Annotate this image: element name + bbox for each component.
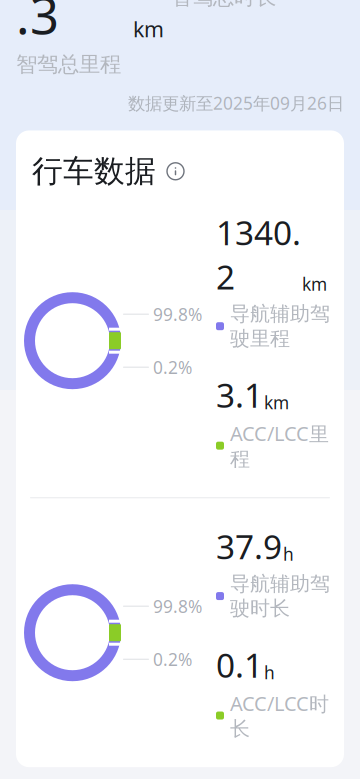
staticText: km xyxy=(264,391,289,414)
staticText: 0.1 xyxy=(216,643,263,687)
staticText: 0.2% xyxy=(153,648,192,671)
button[interactable]: 行车数据说明 xyxy=(163,159,188,184)
staticText: 37.9 xyxy=(216,524,282,569)
staticText: 导航辅助驾驶时长 xyxy=(230,571,330,621)
staticText: h xyxy=(264,661,275,684)
staticText: ACC/LCC里程 xyxy=(230,420,329,471)
staticText: 行车数据 xyxy=(32,152,156,190)
staticText: h xyxy=(283,542,294,565)
staticText: 智驾总时长 xyxy=(171,0,276,10)
staticText: 导航辅助驾驶里程 xyxy=(230,302,330,351)
staticText: 数据更新至2025年09月26日 xyxy=(128,91,344,114)
staticText: 3.1 xyxy=(216,373,263,417)
staticText: 99.8% xyxy=(153,303,202,326)
staticText: km xyxy=(302,273,327,296)
staticText: 0.2% xyxy=(153,356,192,379)
staticText: ACC/LCC时长 xyxy=(230,690,329,741)
staticText: 智驾总里程 xyxy=(16,51,121,77)
staticText: 99.8% xyxy=(153,595,202,618)
staticText: km xyxy=(133,15,164,43)
staticText: 1340.2 xyxy=(216,210,301,299)
staticText: 1343.3 xyxy=(16,0,132,48)
